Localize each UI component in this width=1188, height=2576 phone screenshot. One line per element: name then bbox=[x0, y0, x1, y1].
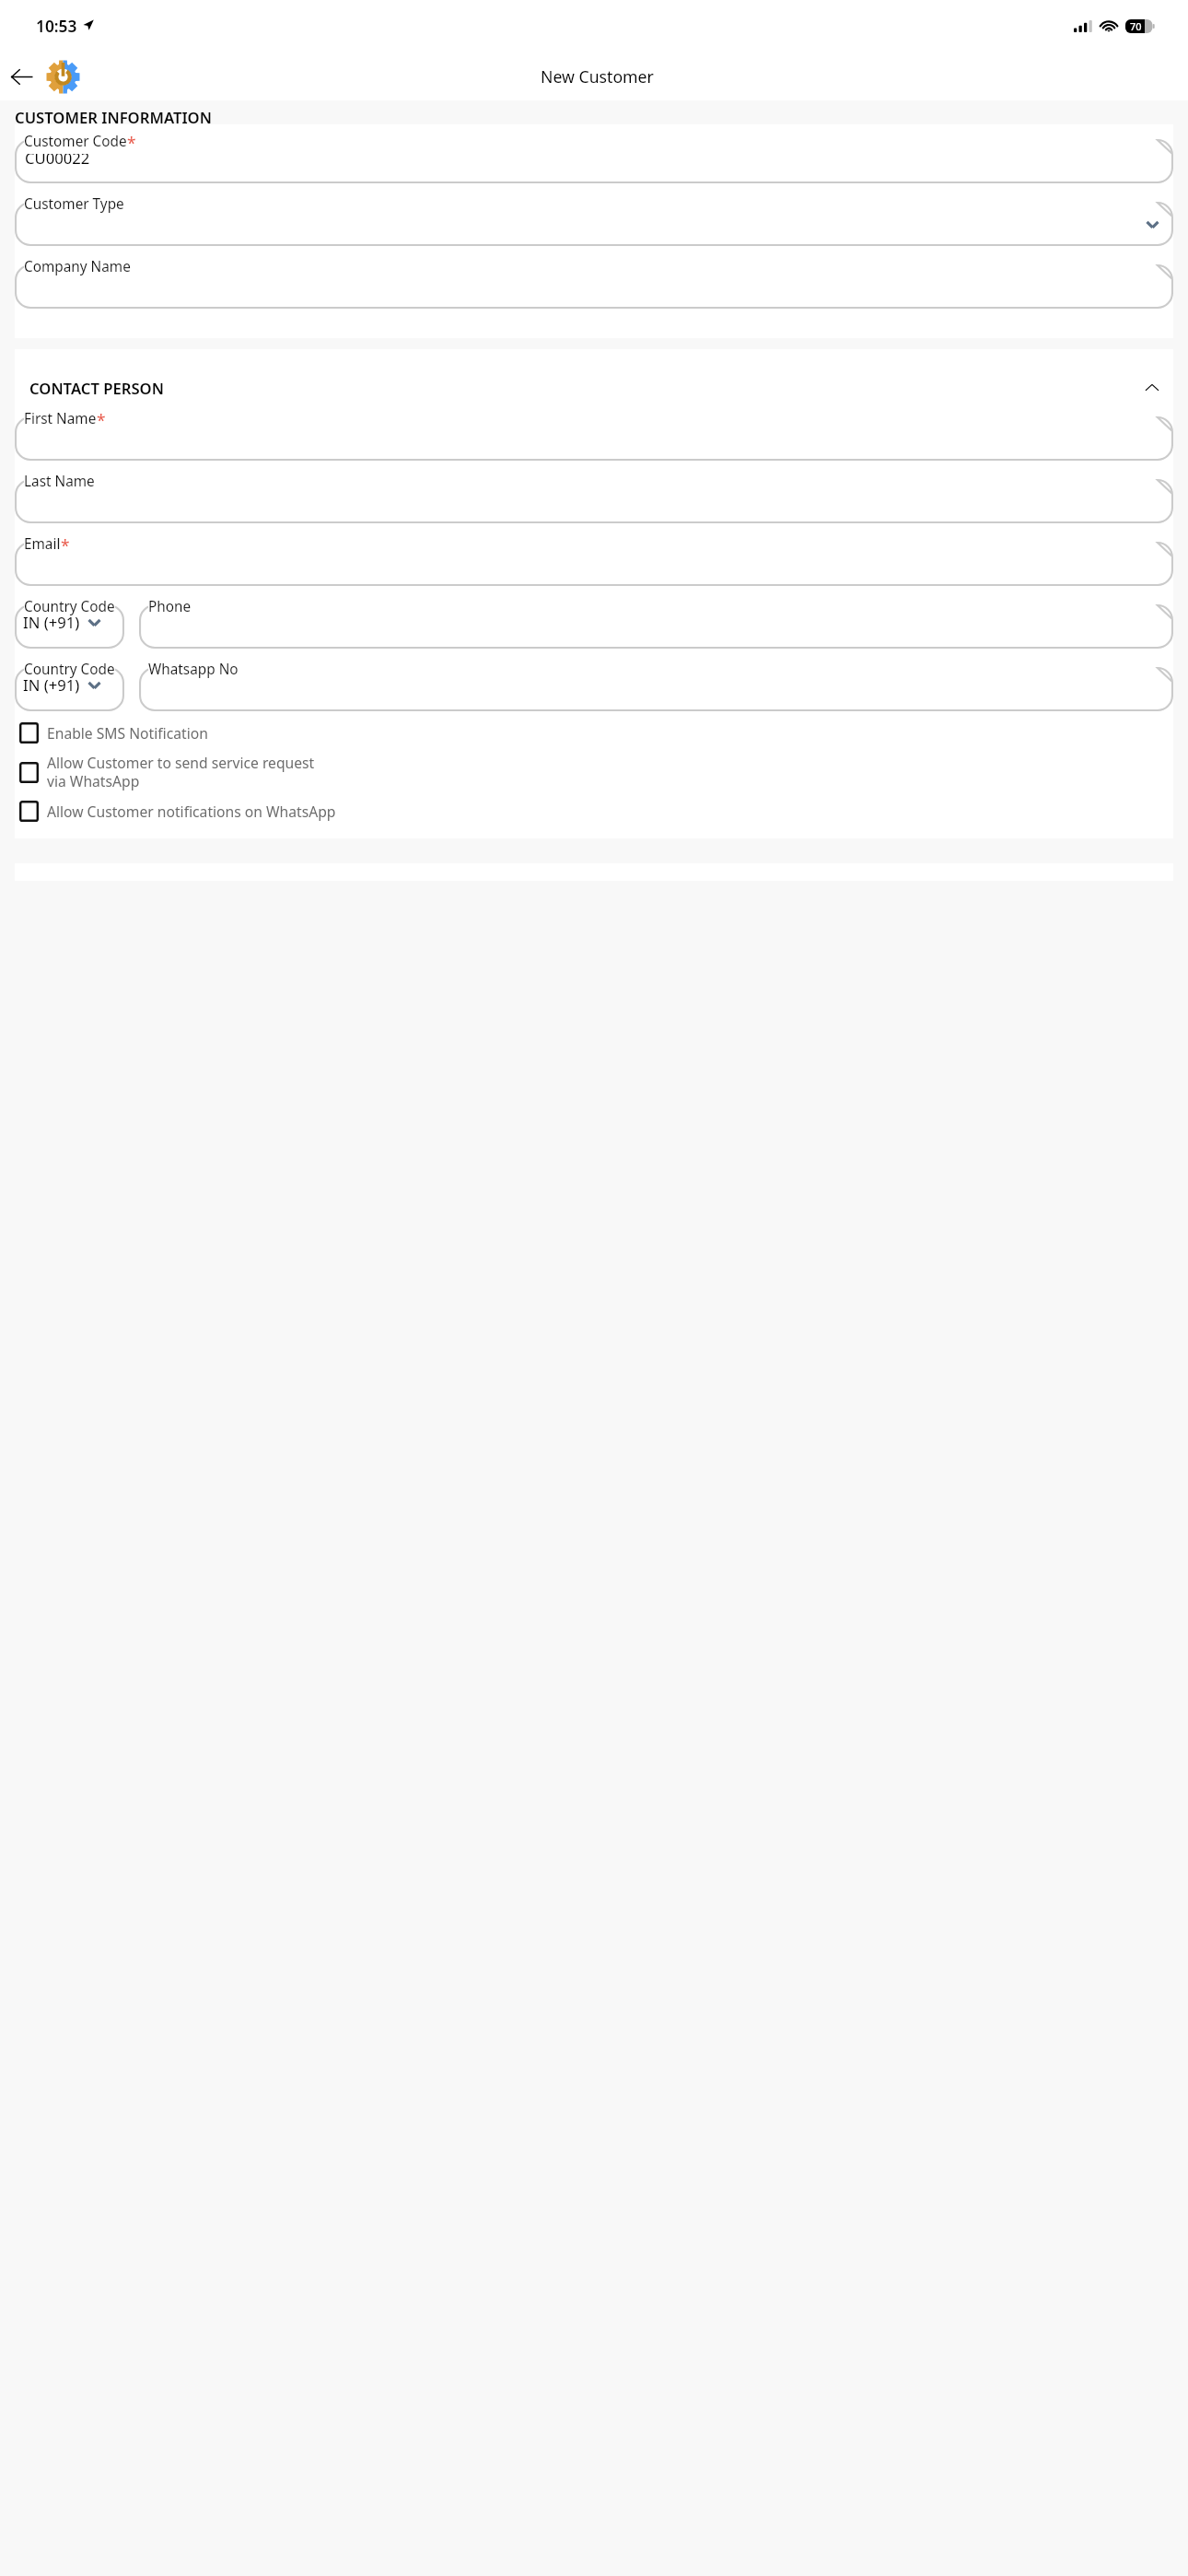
staticText: IN (+91) bbox=[23, 674, 80, 696]
staticText: CU00022 bbox=[25, 147, 90, 169]
staticText: * bbox=[61, 534, 70, 556]
button[interactable]: Country Code bbox=[15, 604, 124, 649]
staticText: * bbox=[127, 132, 136, 154]
staticText: 10:53 bbox=[36, 15, 77, 37]
button[interactable] bbox=[139, 667, 1173, 711]
staticText: New Customer bbox=[541, 65, 654, 88]
button[interactable] bbox=[15, 264, 1173, 309]
staticText: IN (+91) bbox=[23, 612, 80, 633]
button[interactable]: CU00022 bbox=[15, 139, 1173, 183]
staticText: Phone bbox=[148, 597, 192, 616]
button[interactable]: Open Customer Type dropdown bbox=[15, 202, 1173, 246]
button[interactable]: Allow Customer to send service request v… bbox=[15, 750, 1173, 794]
staticText: CUSTOMER INFORMATION bbox=[15, 107, 212, 124]
other: Open Customer Type dropdown bbox=[1143, 215, 1162, 234]
staticText: Allow Customer notifications on WhatsApp bbox=[47, 802, 336, 821]
staticText: CONTACT PERSON bbox=[29, 378, 1142, 397]
staticText: Enable SMS Notification bbox=[47, 723, 208, 743]
staticText: Customer Type bbox=[24, 194, 124, 214]
button[interactable]: Enable SMS Notification bbox=[15, 720, 1173, 746]
button[interactable]: Back bbox=[6, 61, 38, 93]
button[interactable] bbox=[15, 479, 1173, 523]
staticText: Allow Customer to send service request v… bbox=[47, 753, 315, 791]
staticText: Country Code bbox=[24, 597, 115, 616]
button[interactable]: Allow Customer notifications on WhatsApp bbox=[15, 798, 1173, 825]
staticText: First Name bbox=[24, 409, 97, 428]
staticText: Email bbox=[24, 534, 61, 554]
staticText: * bbox=[97, 409, 106, 431]
button[interactable]: CONTACT PERSON bbox=[29, 378, 1161, 397]
staticText: Company Name bbox=[24, 257, 131, 276]
staticText: Last Name bbox=[24, 472, 95, 491]
staticText: Country Code bbox=[24, 660, 115, 679]
other: Collapse Contact Person bbox=[1142, 378, 1161, 397]
staticText: Customer Code bbox=[24, 132, 127, 151]
staticText: 70 bbox=[1130, 19, 1142, 33]
staticText: Whatsapp No bbox=[148, 660, 239, 679]
button[interactable]: Country Code bbox=[15, 667, 124, 711]
button[interactable] bbox=[139, 604, 1173, 649]
button[interactable] bbox=[15, 542, 1173, 586]
button[interactable] bbox=[15, 416, 1173, 461]
